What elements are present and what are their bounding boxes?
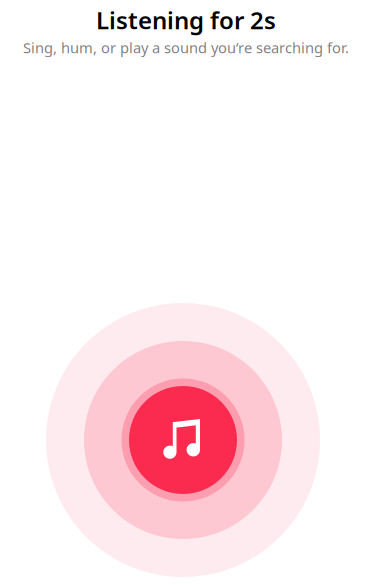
staticText: Listening for 2s [96, 4, 276, 36]
button[interactable]: Listening, tap to stop [46, 303, 320, 577]
staticText: Sing, hum, or play a sound you’re search… [23, 38, 349, 57]
